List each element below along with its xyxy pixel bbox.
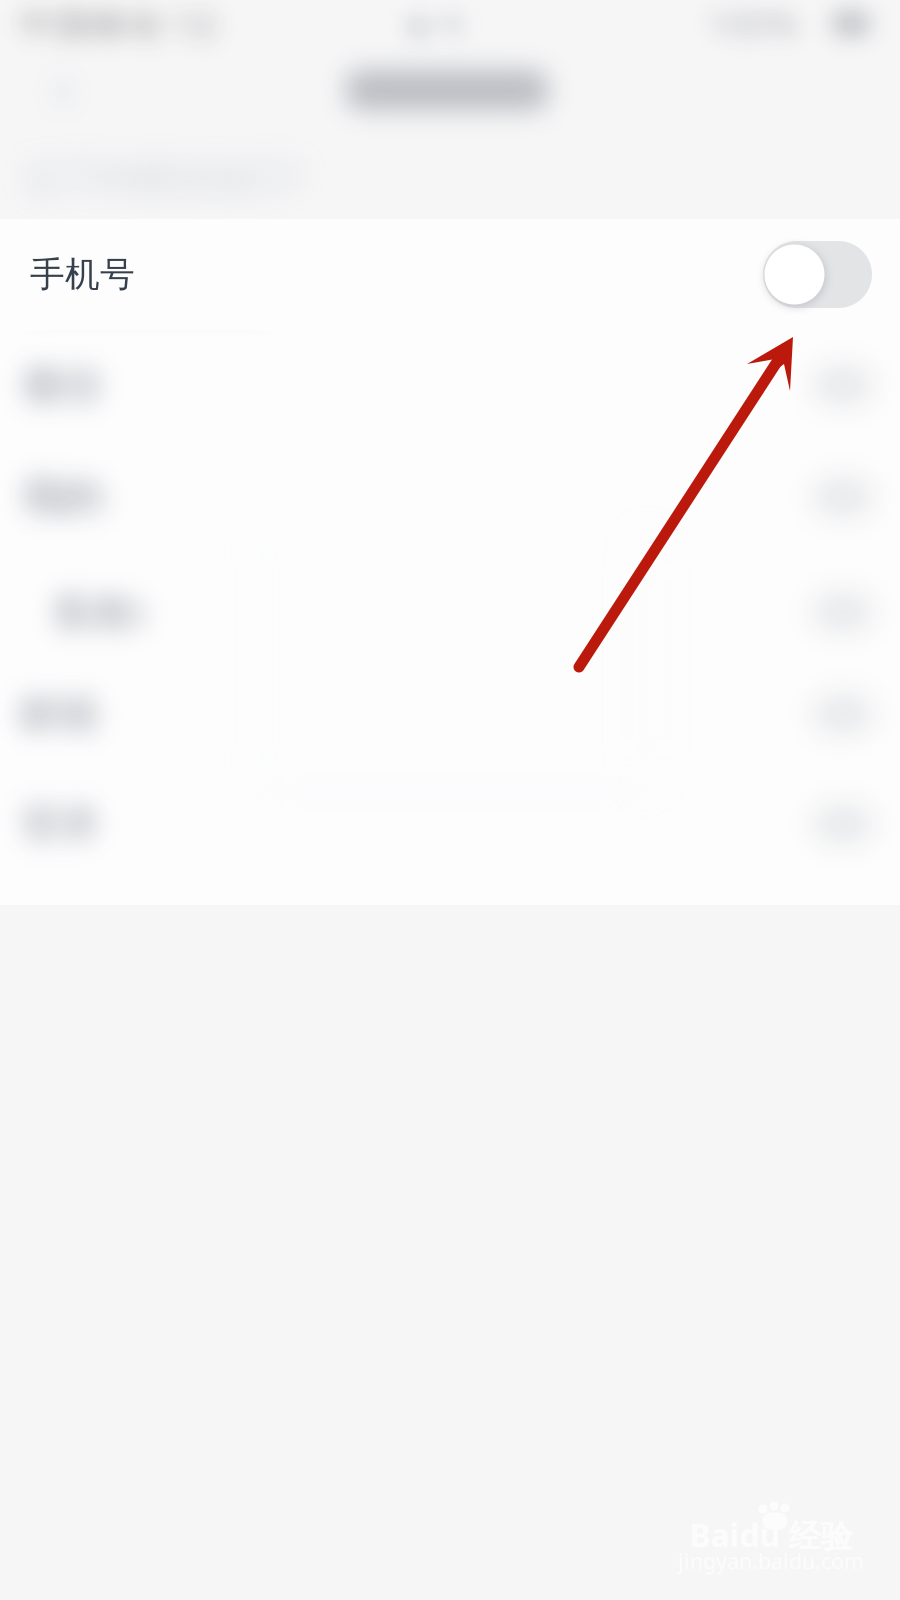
button[interactable]: 邮箱	[0, 658, 900, 770]
button[interactable]: 登录设备	[0, 768, 900, 880]
button[interactable]: 手机号	[0, 219, 900, 330]
button[interactable]: 实名信息	[0, 556, 900, 668]
staticText: 手机号	[30, 253, 135, 296]
button[interactable]: 我的地址	[0, 441, 900, 553]
button[interactable]: 微信号	[0, 329, 900, 441]
staticText: 中国移动 12:05	[280, 0, 527, 47]
